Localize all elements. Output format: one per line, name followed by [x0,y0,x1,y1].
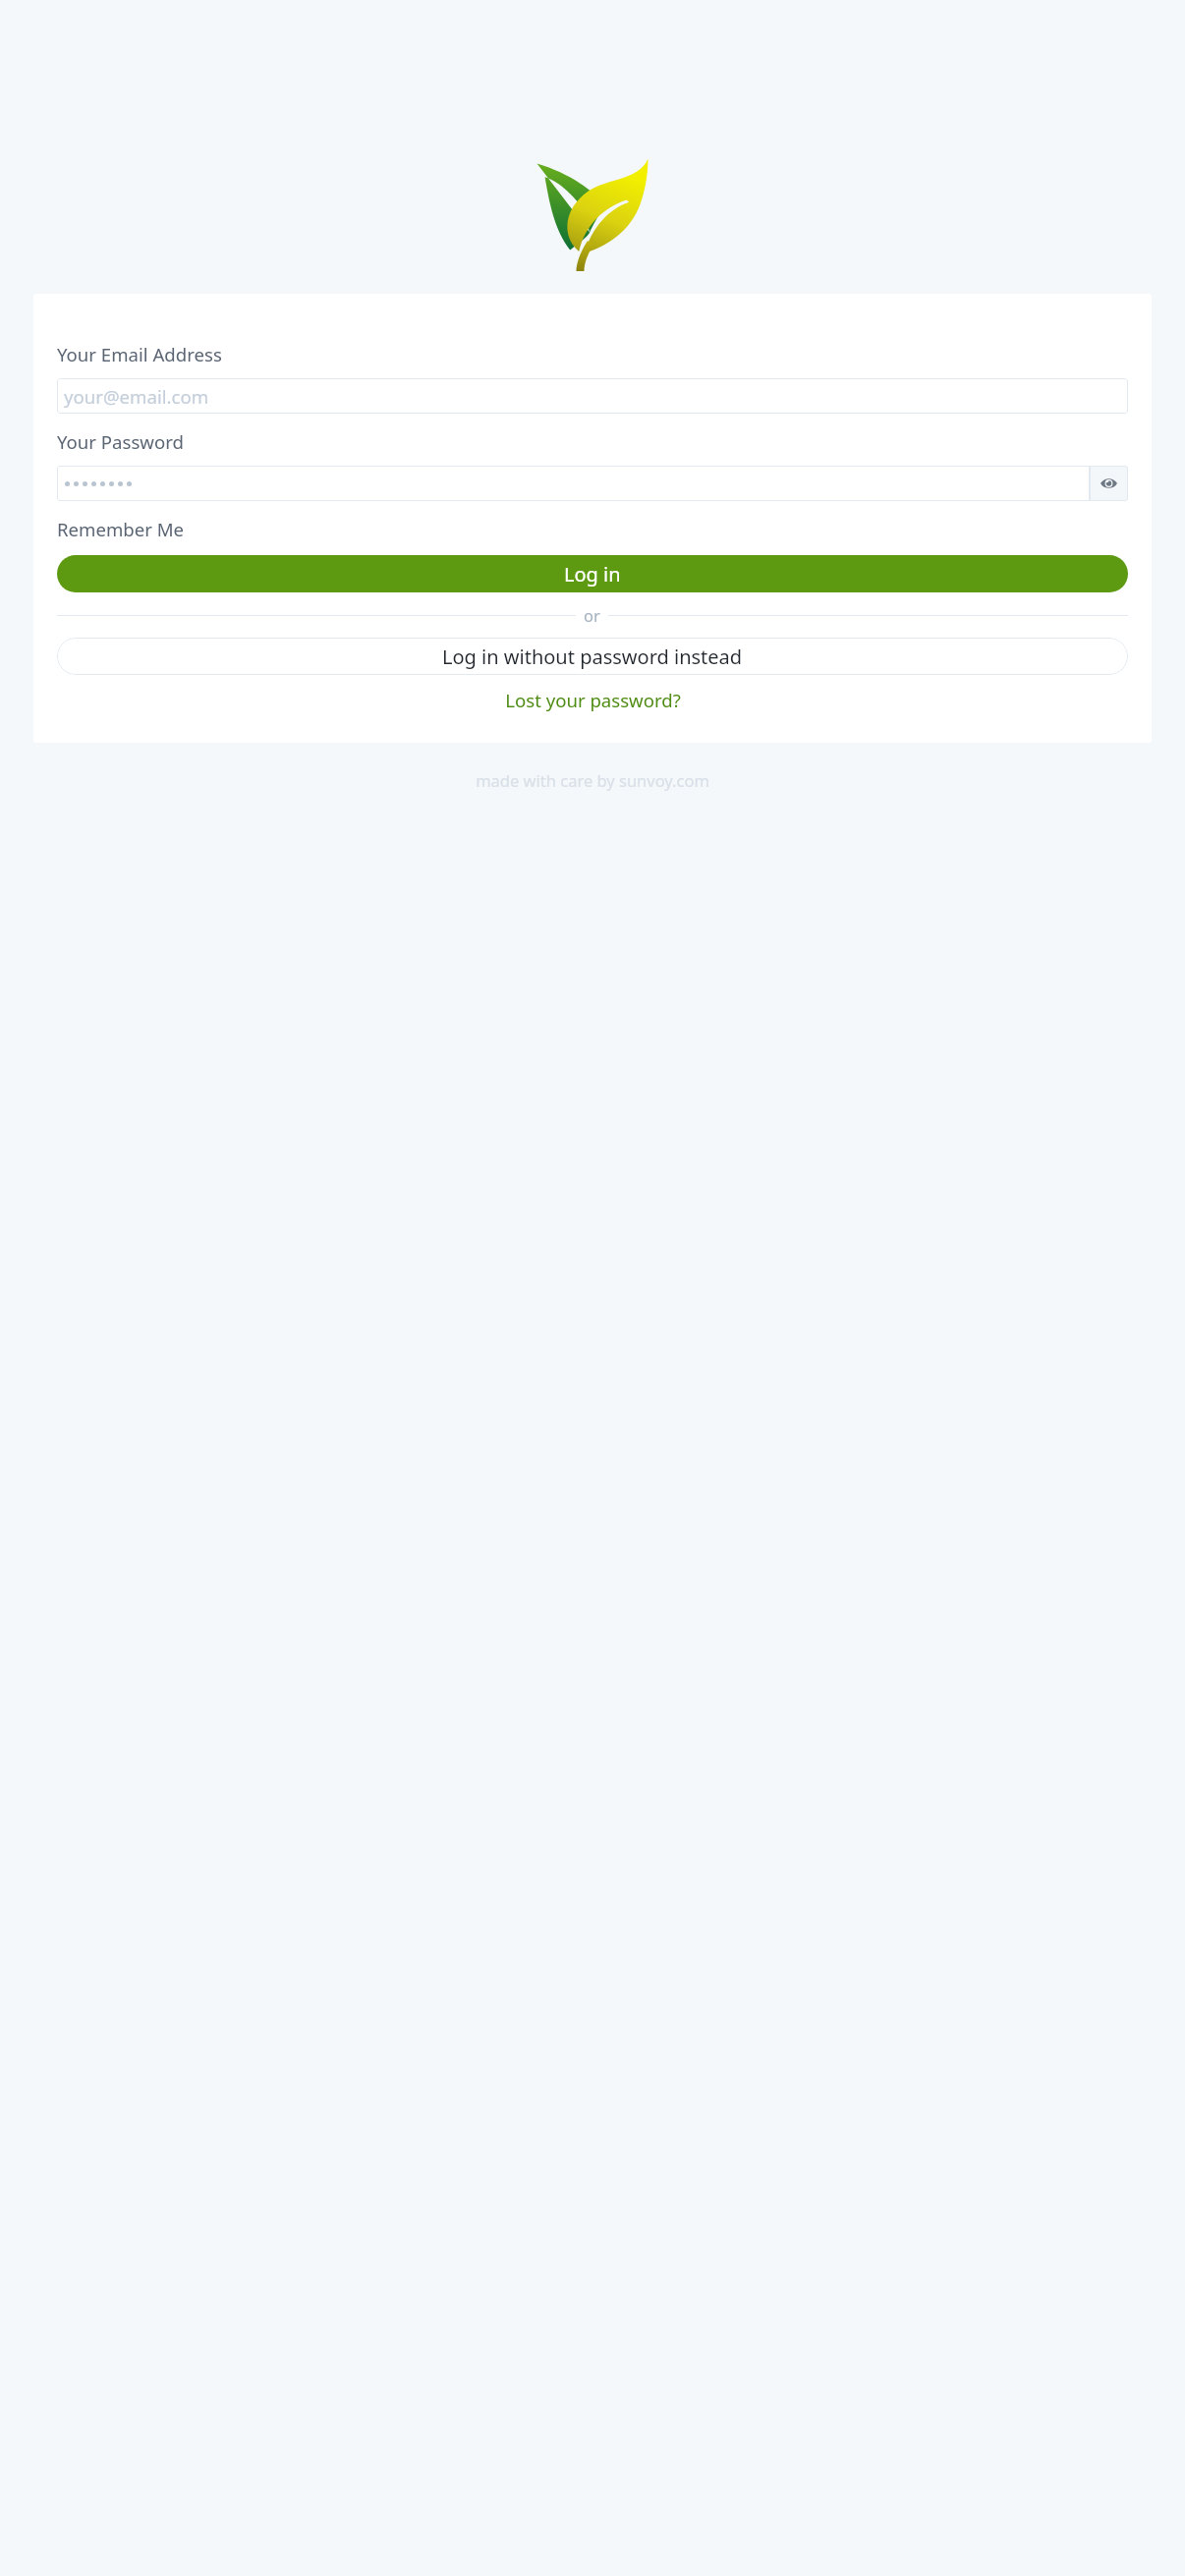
button[interactable]: Lost your password? [57,688,1128,712]
staticText: Your Password [57,429,184,454]
staticText: or [584,604,600,626]
staticText: Your Email Address [57,342,222,366]
button[interactable]: Log in [57,555,1128,592]
staticText: Log in without password instead [442,644,743,670]
staticText: Remember Me [57,517,185,541]
button[interactable]: Remember Me [57,517,185,541]
button[interactable]: Log in without password instead [57,638,1128,675]
staticText: Log in [564,561,621,588]
button[interactable]: your@email.com [57,378,1128,414]
button[interactable] [57,466,1090,501]
staticText: Lost your password? [505,688,681,712]
staticText: your@email.com [64,384,209,409]
button[interactable]: Show password [1090,466,1128,501]
staticText: made with care by sunvoy.com [476,769,709,791]
